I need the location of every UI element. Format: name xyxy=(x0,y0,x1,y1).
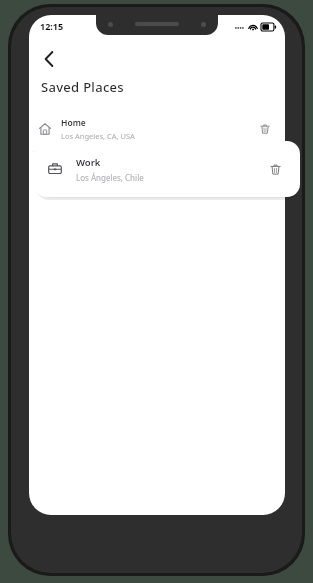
staticText: 12:15 xyxy=(40,20,64,32)
staticText: Home xyxy=(61,117,86,129)
button[interactable]: Work xyxy=(34,141,300,197)
button[interactable]: Delete Work xyxy=(264,158,286,180)
button[interactable]: Back xyxy=(35,45,63,73)
button[interactable]: Home xyxy=(29,112,285,146)
staticText: Saved Places xyxy=(41,78,124,96)
staticText: Los Ángeles, Chile xyxy=(76,172,144,183)
staticText: Work xyxy=(76,156,101,169)
button[interactable]: Delete Home xyxy=(255,119,275,139)
staticText: Los Angeles, CA, USA xyxy=(61,131,135,141)
